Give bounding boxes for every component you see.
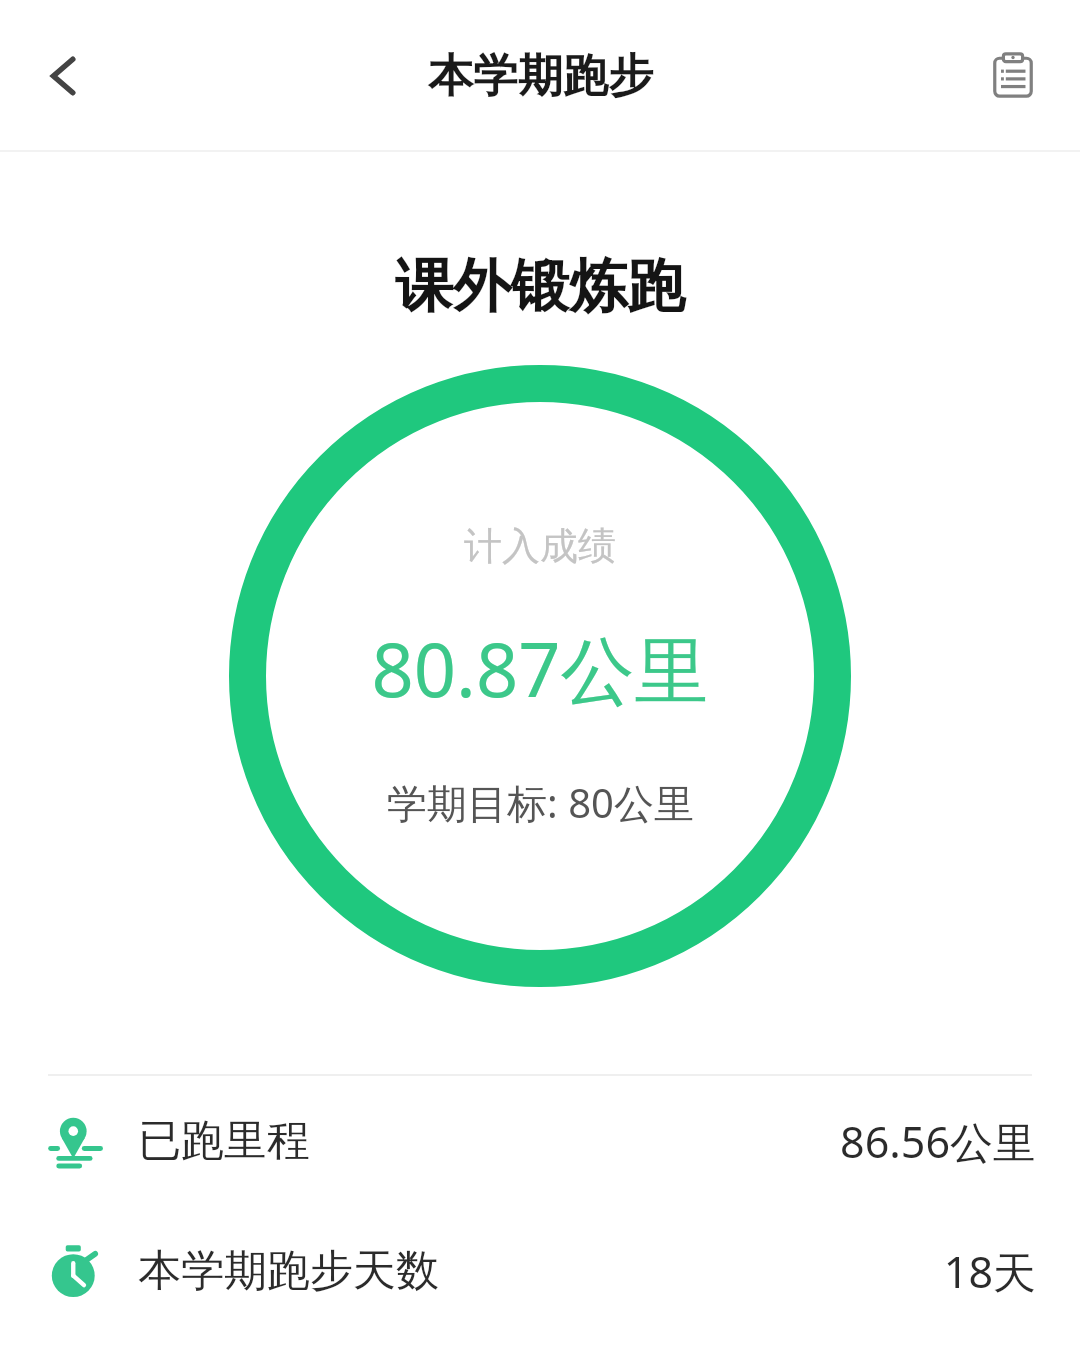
button[interactable]: Records [968,31,1058,121]
staticText: 本学期跑步天数 [138,1244,439,1298]
button[interactable]: Distance [0,1076,1080,1206]
staticText: 80.87公里 [371,618,709,719]
staticText: 已跑里程 [138,1114,310,1168]
staticText: 本学期跑步 [428,48,653,105]
button[interactable]: Days [0,1206,1080,1336]
staticText: 计入成绩 [464,522,616,570]
staticText: 学期目标: 80公里 [387,775,694,830]
staticText: 课外锻炼跑 [0,250,1080,323]
other: Distance [44,1110,106,1172]
other: Days [44,1240,106,1302]
staticText: 86.56公里 [840,1112,1036,1171]
button[interactable]: Back [14,26,114,126]
staticText: 18天 [943,1242,1036,1301]
